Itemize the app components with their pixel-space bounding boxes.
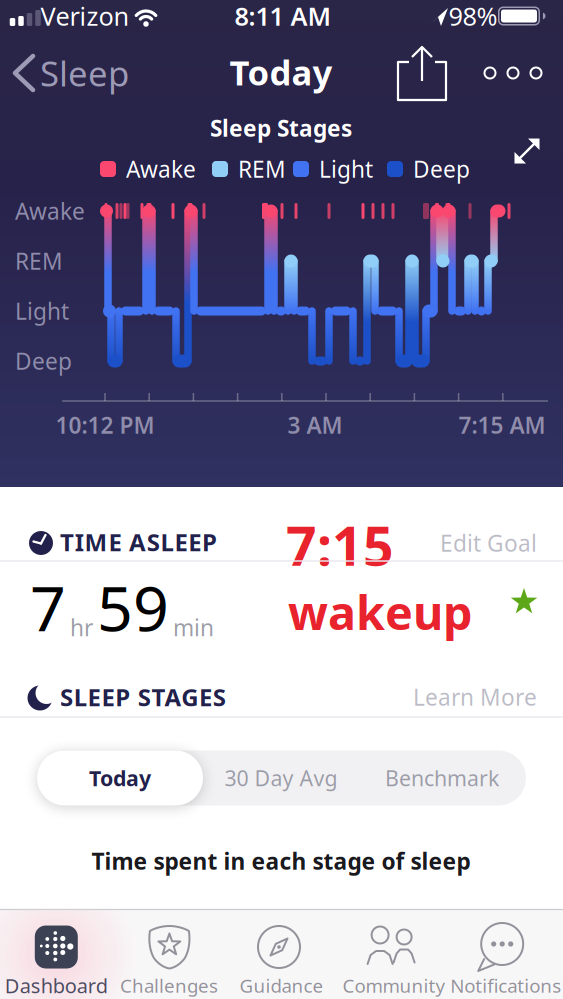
staticText: Light bbox=[15, 296, 69, 326]
staticText: hr bbox=[70, 612, 93, 643]
staticText: 10:12 PM bbox=[55, 410, 154, 440]
staticText: Edit Goal bbox=[440, 528, 537, 558]
staticText: Deep bbox=[413, 154, 470, 184]
button[interactable]: Edit Goal bbox=[417, 528, 537, 558]
staticText: Challenges bbox=[120, 973, 218, 998]
button[interactable]: Challenges bbox=[113, 909, 225, 999]
staticText: 59 bbox=[97, 565, 169, 649]
staticText: 7:15 bbox=[286, 510, 394, 580]
staticText: 98% bbox=[448, 0, 497, 33]
staticText: Sleep bbox=[40, 50, 129, 96]
staticText: Awake bbox=[15, 196, 85, 226]
staticText: Community bbox=[343, 973, 446, 998]
button[interactable]: Today bbox=[37, 750, 203, 805]
staticText: Learn More bbox=[413, 682, 537, 712]
button[interactable] bbox=[476, 53, 550, 93]
button[interactable]: Dashboard bbox=[0, 909, 112, 999]
staticText: 3 AM bbox=[287, 410, 342, 440]
staticText: Time spent in each stage of sleep bbox=[91, 846, 470, 876]
button[interactable]: Sleep bbox=[8, 45, 150, 101]
staticText: SLEEP STAGES bbox=[60, 681, 226, 713]
staticText: 7:15 AM bbox=[458, 410, 545, 440]
button[interactable] bbox=[505, 129, 549, 173]
staticText: Today bbox=[229, 49, 332, 95]
staticText: Verizon bbox=[40, 0, 129, 33]
staticText: min bbox=[173, 612, 214, 643]
button[interactable]: Community bbox=[338, 909, 450, 999]
staticText: Sleep Stages bbox=[210, 113, 352, 143]
staticText: Guidance bbox=[239, 973, 323, 998]
staticText: wakeup bbox=[288, 581, 472, 643]
staticText: Awake bbox=[126, 154, 196, 184]
staticText: Deep bbox=[15, 346, 72, 376]
staticText: Notifications bbox=[450, 973, 561, 998]
button[interactable]: Learn More bbox=[397, 682, 537, 712]
staticText: 7 bbox=[30, 565, 66, 649]
staticText: REM bbox=[15, 246, 63, 276]
button[interactable]: Guidance bbox=[225, 909, 337, 999]
button[interactable]: Benchmark bbox=[362, 750, 522, 805]
button[interactable]: 30 Day Avg bbox=[201, 750, 361, 805]
staticText: Today bbox=[89, 764, 151, 792]
button[interactable]: Notifications bbox=[451, 909, 563, 999]
staticText: REM bbox=[238, 154, 286, 184]
button[interactable] bbox=[390, 40, 454, 108]
staticText: TIME ASLEEP bbox=[60, 526, 217, 558]
staticText: Light bbox=[319, 154, 373, 184]
staticText: 30 Day Avg bbox=[224, 764, 337, 792]
staticText: 8:11 AM bbox=[234, 0, 331, 33]
staticText: Dashboard bbox=[5, 972, 108, 999]
staticText: Benchmark bbox=[385, 764, 499, 792]
